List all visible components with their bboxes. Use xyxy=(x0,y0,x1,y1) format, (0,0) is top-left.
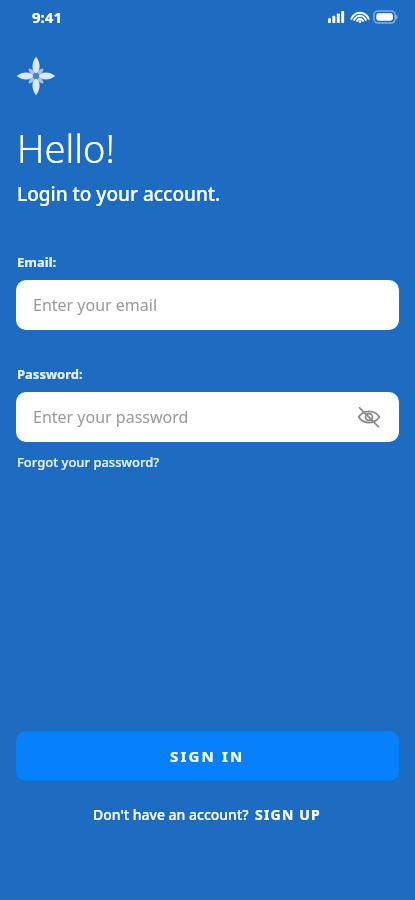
button[interactable]: SIGN IN xyxy=(16,731,399,781)
staticText: Login to your account. xyxy=(17,181,221,207)
button[interactable]: Show password xyxy=(353,401,385,433)
button[interactable]: Forgot your password? xyxy=(15,450,162,474)
staticText: Password: xyxy=(17,365,83,383)
staticText: Don't have an account? xyxy=(93,805,253,824)
button[interactable]: Enter your email xyxy=(16,280,399,330)
staticText: 9:41 xyxy=(32,7,62,27)
button[interactable]: SIGN UP xyxy=(253,802,323,827)
staticText: Hello! xyxy=(17,122,115,174)
staticText: Forgot your password? xyxy=(17,453,160,471)
staticText: SIGN IN xyxy=(170,746,245,766)
staticText: SIGN UP xyxy=(255,805,321,824)
staticText: Enter your email xyxy=(33,294,158,316)
button[interactable]: Enter your password xyxy=(16,392,399,442)
staticText: Enter your password xyxy=(33,406,189,428)
staticText: Email: xyxy=(17,253,57,271)
